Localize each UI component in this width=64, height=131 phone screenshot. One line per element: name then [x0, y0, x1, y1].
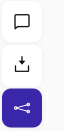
button[interactable]: Message: [2, 1, 42, 42]
button[interactable]: Download: [2, 44, 42, 87]
button[interactable]: Share: [2, 88, 42, 127]
